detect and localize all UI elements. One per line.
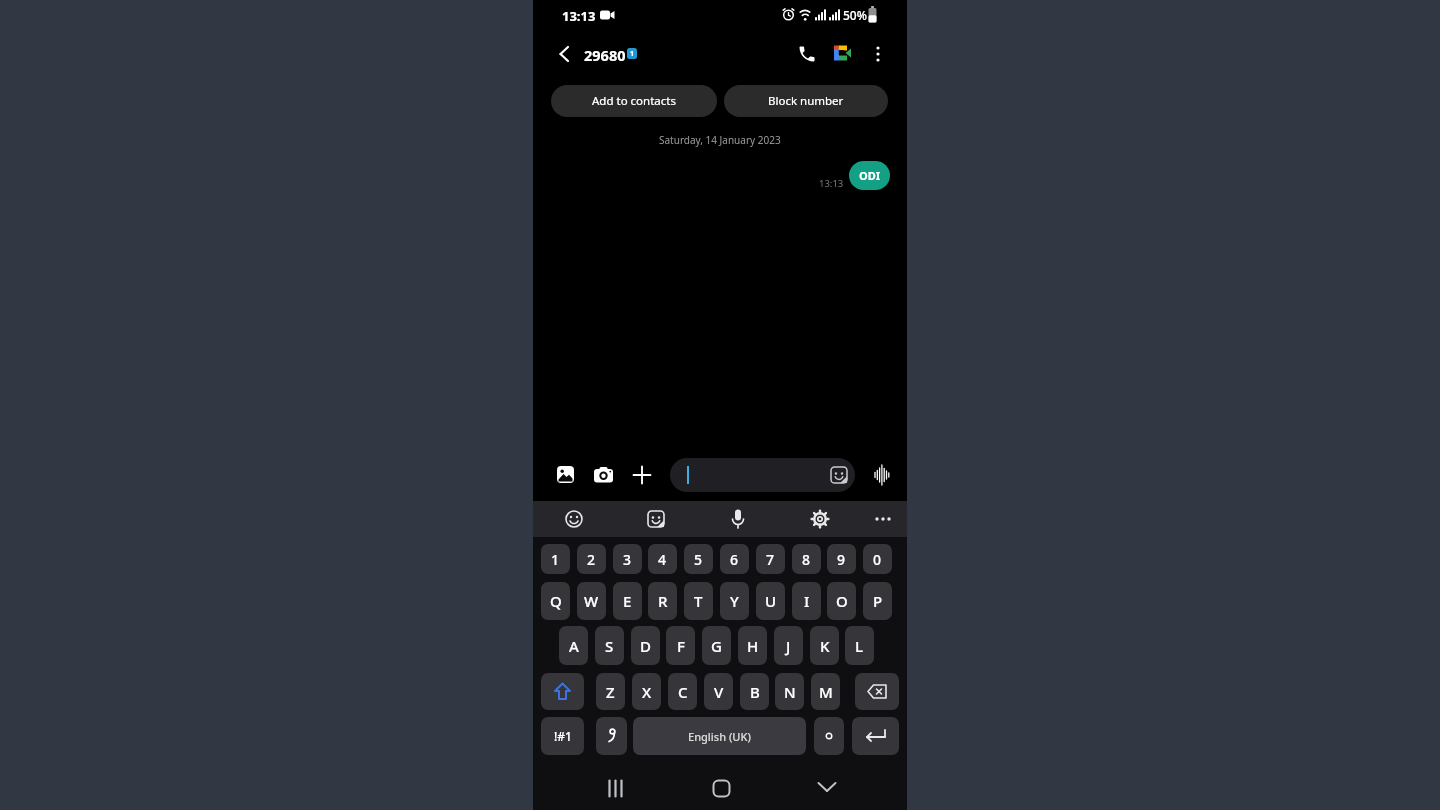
- button[interactable]: [799, 8, 812, 21]
- button[interactable]: [829, 9, 841, 21]
- button[interactable]: [594, 467, 614, 483]
- button[interactable]: [872, 44, 884, 64]
- button[interactable]: X: [632, 673, 661, 710]
- staticText: A: [569, 636, 579, 656]
- staticText: 7: [766, 550, 775, 569]
- button[interactable]: A: [559, 626, 588, 665]
- button[interactable]: [600, 9, 615, 21]
- button[interactable]: 1: [627, 48, 637, 59]
- button[interactable]: [647, 510, 665, 528]
- button[interactable]: 0: [863, 544, 892, 574]
- button[interactable]: [596, 717, 627, 755]
- button[interactable]: P: [863, 582, 892, 620]
- button[interactable]: [874, 464, 890, 486]
- staticText: D: [640, 636, 651, 656]
- button[interactable]: [873, 510, 893, 528]
- button[interactable]: English (UK): [633, 717, 806, 755]
- staticText: !#1: [554, 728, 572, 744]
- button[interactable]: I: [792, 582, 821, 620]
- button[interactable]: N: [775, 673, 804, 710]
- staticText: P: [873, 591, 883, 611]
- button[interactable]: ODI: [849, 161, 890, 190]
- button[interactable]: F: [666, 626, 695, 665]
- button[interactable]: J: [774, 626, 803, 665]
- staticText: 9: [837, 550, 846, 569]
- button[interactable]: [633, 466, 651, 484]
- button[interactable]: Z: [596, 673, 625, 710]
- staticText: 2: [587, 550, 596, 569]
- staticText: J: [786, 636, 791, 656]
- staticText: 5: [694, 550, 703, 569]
- staticText: G: [711, 636, 722, 656]
- button[interactable]: [834, 45, 852, 61]
- button[interactable]: [557, 466, 575, 484]
- button[interactable]: [855, 673, 899, 710]
- button[interactable]: 6: [720, 544, 749, 574]
- staticText: W: [584, 591, 599, 611]
- staticText: V: [714, 682, 724, 702]
- staticText: Y: [730, 591, 739, 611]
- button[interactable]: Block number: [724, 85, 888, 117]
- staticText: C: [678, 682, 688, 702]
- button[interactable]: G: [702, 626, 731, 665]
- button[interactable]: B: [740, 673, 769, 710]
- button[interactable]: [868, 6, 877, 23]
- button[interactable]: S: [595, 626, 624, 665]
- button[interactable]: 3: [613, 544, 642, 574]
- staticText: Add to contacts: [592, 93, 676, 109]
- button[interactable]: [852, 717, 899, 755]
- button[interactable]: 5: [684, 544, 713, 574]
- button[interactable]: 2: [577, 544, 606, 574]
- button[interactable]: [565, 510, 583, 528]
- staticText: U: [765, 591, 777, 611]
- button[interactable]: [811, 510, 829, 528]
- button[interactable]: [555, 44, 575, 64]
- button[interactable]: [729, 509, 747, 529]
- staticText: S: [605, 636, 614, 656]
- button[interactable]: M: [811, 673, 840, 710]
- button[interactable]: 4: [648, 544, 677, 574]
- button[interactable]: R: [648, 582, 677, 620]
- staticText: H: [747, 636, 759, 656]
- button[interactable]: L: [845, 626, 874, 665]
- button[interactable]: [815, 9, 827, 21]
- button[interactable]: Add to contacts: [551, 85, 717, 117]
- button[interactable]: 8: [792, 544, 821, 574]
- staticText: T: [694, 591, 703, 611]
- staticText: 13:13: [562, 7, 596, 23]
- button[interactable]: [713, 780, 730, 797]
- button[interactable]: Y: [720, 582, 749, 620]
- button[interactable]: E: [613, 582, 642, 620]
- staticText: English (UK): [688, 729, 751, 744]
- button[interactable]: T: [684, 582, 713, 620]
- button[interactable]: 7: [756, 544, 785, 574]
- button[interactable]: [814, 717, 844, 755]
- button[interactable]: O: [827, 582, 856, 620]
- staticText: Z: [606, 682, 615, 702]
- button[interactable]: [782, 8, 795, 21]
- button[interactable]: U: [756, 582, 785, 620]
- button[interactable]: H: [738, 626, 767, 665]
- staticText: X: [642, 682, 652, 702]
- button[interactable]: C: [668, 673, 697, 710]
- button[interactable]: D: [631, 626, 660, 665]
- button[interactable]: V: [704, 673, 733, 710]
- button[interactable]: 1: [541, 544, 570, 574]
- button[interactable]: [608, 780, 625, 797]
- staticText: 13:13: [819, 177, 844, 189]
- staticText: M: [819, 682, 833, 702]
- button[interactable]: 9: [827, 544, 856, 574]
- staticText: Q: [550, 591, 562, 611]
- button[interactable]: [670, 458, 855, 492]
- button[interactable]: K: [810, 626, 839, 665]
- button[interactable]: W: [577, 582, 606, 620]
- staticText: 3: [623, 550, 632, 569]
- staticText: B: [750, 682, 760, 702]
- button[interactable]: [797, 44, 817, 64]
- button[interactable]: !#1: [541, 717, 584, 755]
- button[interactable]: [541, 673, 584, 710]
- staticText: 8: [802, 550, 811, 569]
- button[interactable]: Q: [541, 582, 570, 620]
- button[interactable]: [818, 782, 836, 794]
- staticText: 4: [658, 550, 667, 569]
